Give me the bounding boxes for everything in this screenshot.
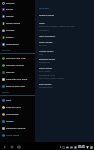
button[interactable]: Display <box>0 13 35 20</box>
button[interactable]: Location services <box>0 62 35 69</box>
staticText: Language and input <box>6 78 28 81</box>
button[interactable]: About tablet <box>0 132 35 139</box>
staticText: Phone status of battery, network, and ot… <box>39 25 75 31</box>
staticText: Kernel version <box>39 67 53 70</box>
staticText: 3.0.8-1109281 se.infra@SEP-90 #2 Wed Nov… <box>39 70 65 79</box>
staticText: Model number <box>39 41 53 44</box>
staticText: GT-P3100 <box>39 44 47 46</box>
staticText: Build number <box>39 83 52 86</box>
staticText: Sound <box>6 8 13 11</box>
staticText: Date and time <box>6 106 21 109</box>
staticText: P3100XXALE6 <box>39 61 51 63</box>
staticText: Settings <box>6 2 15 5</box>
button[interactable]: Storage <box>0 27 35 34</box>
staticText: Battery <box>6 36 14 39</box>
button[interactable]: Applications <box>0 41 35 48</box>
staticText: IMM76D.XXALE6 <box>39 86 53 88</box>
staticText: Status <box>39 22 45 25</box>
staticText: Back up and reset <box>6 85 25 88</box>
button[interactable]: Motion <box>0 118 35 125</box>
button[interactable]: Legal information <box>35 34 94 40</box>
staticText: Dock <box>6 99 12 102</box>
button[interactable]: Back up and reset <box>0 83 35 90</box>
button[interactable]: Build number <box>35 82 94 89</box>
staticText: Legal information <box>39 35 56 38</box>
staticText: System <box>2 91 9 94</box>
staticText: Security <box>6 71 15 74</box>
staticText: 03:30 <box>78 145 85 149</box>
button[interactable]: Kernel version <box>35 66 94 82</box>
staticText: About tablet <box>39 7 50 9</box>
button[interactable]: Home <box>10 145 14 149</box>
staticText: Personal <box>2 49 11 52</box>
button[interactable]: Sound <box>0 6 35 13</box>
staticText: Location services <box>6 64 25 67</box>
button[interactable]: Settings <box>0 0 35 6</box>
button[interactable]: Model number <box>35 40 94 49</box>
staticText: About tablet <box>6 134 20 137</box>
button[interactable]: Language and input <box>0 76 35 83</box>
button[interactable]: Status <box>35 21 94 34</box>
button[interactable]: Power saving <box>0 20 35 27</box>
staticText: Storage <box>6 29 15 32</box>
button[interactable]: Android version <box>35 49 94 57</box>
button[interactable]: Battery <box>0 34 35 41</box>
staticText: Power saving <box>6 22 21 25</box>
staticText: Baseband version <box>39 58 56 61</box>
staticText: Software update <box>39 14 55 17</box>
button[interactable]: Baseband version <box>35 57 94 66</box>
button[interactable]: Accounts and sync <box>0 55 35 62</box>
button[interactable]: Dock <box>0 97 35 104</box>
button[interactable]: Date and time <box>0 104 35 111</box>
staticText: Android version <box>39 50 54 53</box>
staticText: Developer options <box>6 127 26 130</box>
button[interactable]: Developer options <box>0 125 35 132</box>
button[interactable]: Software update <box>35 13 94 21</box>
button[interactable]: Back <box>3 145 7 149</box>
button[interactable]: Security <box>0 69 35 76</box>
staticText: Accessibility <box>6 113 19 116</box>
staticText: 4.0.4 <box>39 53 43 55</box>
staticText: Display <box>6 15 14 18</box>
staticText: Applications <box>6 43 19 46</box>
staticText: Accounts and sync <box>6 57 26 60</box>
button[interactable]: Accessibility <box>0 111 35 118</box>
staticText: Motion <box>6 120 14 123</box>
button[interactable]: Recent apps <box>17 145 21 149</box>
